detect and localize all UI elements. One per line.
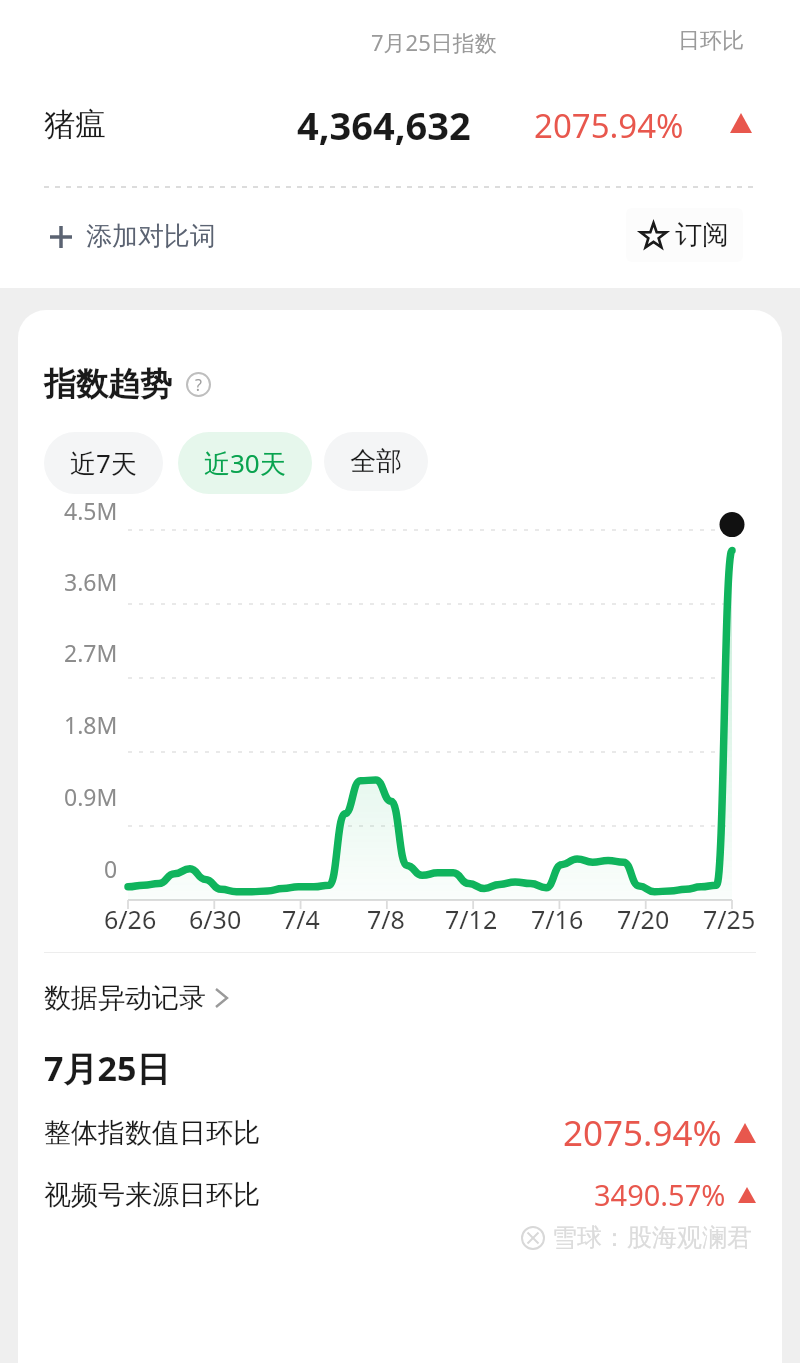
button[interactable]: 视频号来源日环比	[18, 1175, 782, 1214]
staticText: 6/26	[104, 902, 157, 936]
staticText: 7/20	[617, 902, 670, 936]
staticText: 近30天	[204, 445, 286, 481]
staticText: 0.9M	[64, 781, 118, 812]
staticText: 视频号来源日环比	[44, 1178, 260, 1212]
staticText: 雪球：股海观澜君	[552, 1222, 752, 1253]
staticText: 2.7M	[64, 637, 118, 668]
staticText: 数据异动记录	[44, 981, 206, 1015]
staticText: 2075.94%	[563, 1109, 722, 1157]
button[interactable]: 添加对比词	[40, 212, 224, 261]
staticText: 指数趋势	[44, 364, 172, 404]
button[interactable]: 近30天	[178, 432, 312, 494]
button[interactable]: 近7天	[44, 432, 163, 494]
staticText: 6/30	[189, 902, 242, 936]
staticText: 订阅	[675, 218, 729, 252]
staticText: 4.5M	[64, 495, 118, 526]
button[interactable]: 数据异动记录	[44, 975, 230, 1021]
button[interactable]: Subscribe	[626, 208, 743, 262]
staticText: 3.6M	[64, 566, 118, 597]
other: Subscribe	[640, 222, 667, 249]
staticText: 添加对比词	[86, 220, 216, 253]
staticText: 3490.57%	[594, 1175, 726, 1214]
staticText: 2075.94%	[534, 103, 684, 148]
staticText: 7月25日	[44, 1045, 171, 1091]
staticText: 近7天	[70, 445, 137, 481]
staticText: 7/8	[367, 902, 405, 936]
staticText: 整体指数值日环比	[44, 1116, 260, 1150]
staticText: 7月25日指数	[371, 27, 497, 57]
staticText: 7/4	[282, 902, 320, 936]
button[interactable]: 全部	[324, 432, 428, 491]
staticText: 7/25	[703, 902, 756, 936]
staticText: 全部	[350, 445, 402, 478]
staticText: 7/16	[531, 902, 584, 936]
staticText: 猪瘟	[44, 105, 106, 144]
staticText: 1.8M	[64, 709, 118, 740]
staticText: 日环比	[678, 27, 744, 55]
staticText: ?	[195, 374, 202, 396]
staticText: 7/12	[445, 902, 498, 936]
staticText: 0	[104, 853, 118, 884]
staticText: 4,364,632	[297, 99, 471, 151]
button[interactable]: 整体指数值日环比	[18, 1109, 782, 1157]
button[interactable]: Help	[186, 372, 211, 397]
